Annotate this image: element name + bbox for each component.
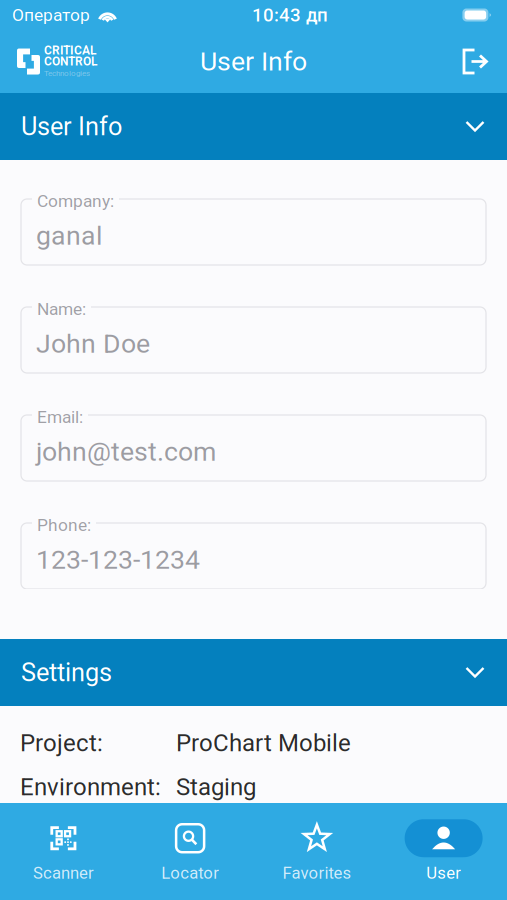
staticText: Scanner: [33, 863, 94, 883]
staticText: Technologies: [44, 68, 90, 78]
button[interactable]: Scanner: [0, 819, 127, 883]
staticText: Project:: [20, 729, 103, 757]
staticText: User Info: [21, 112, 122, 141]
staticText: 10:43 дп: [252, 4, 328, 26]
button[interactable]: User: [380, 819, 507, 883]
staticText: Оператор: [12, 5, 90, 25]
staticText: User: [426, 863, 461, 883]
staticText: Company:: [37, 191, 114, 211]
staticText: ganal: [36, 220, 102, 251]
staticText: Email:: [37, 407, 83, 427]
staticText: John Doe: [36, 328, 150, 359]
staticText: Locator: [161, 863, 219, 883]
staticText: CONTROL: [44, 54, 97, 68]
staticText: Name:: [37, 299, 86, 319]
button[interactable]: User Info: [0, 93, 507, 160]
staticText: Phone:: [37, 515, 91, 535]
staticText: Staging: [176, 773, 256, 801]
staticText: john@test.com: [36, 436, 216, 467]
button[interactable]: Settings: [0, 639, 507, 706]
staticText: User Info: [200, 46, 307, 77]
button[interactable]: Locator: [127, 819, 254, 883]
staticText: Environment:: [20, 773, 161, 801]
button[interactable]: Log out: [462, 48, 489, 74]
staticText: Settings: [21, 658, 112, 687]
staticText: 123-123-1234: [36, 544, 200, 575]
button[interactable]: Favorites: [253, 819, 380, 883]
staticText: CRITICAL: [44, 43, 96, 57]
staticText: Favorites: [282, 863, 351, 883]
staticText: ProChart Mobile: [176, 729, 351, 757]
